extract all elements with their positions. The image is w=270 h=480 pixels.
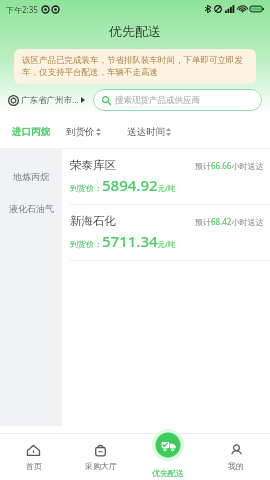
other: 首页 bbox=[26, 443, 41, 458]
staticText: 液化石油气 bbox=[9, 203, 54, 214]
staticText: 荣泰库区 bbox=[70, 158, 116, 172]
button[interactable]: 我的 bbox=[202, 433, 270, 480]
other: 我的 bbox=[229, 443, 244, 458]
staticText: 搜索现货产品或供应商 bbox=[115, 95, 200, 106]
button[interactable]: 荣泰库区 bbox=[62, 149, 270, 204]
staticText: 该区产品已完成装车，节省排队装车时间，下单即可立即发车，仅支持平台配送，车辆不走… bbox=[22, 55, 248, 78]
staticText: 我的 bbox=[228, 461, 244, 471]
staticText: 下午2:35 bbox=[6, 4, 38, 15]
button[interactable]: 送达时间 bbox=[123, 126, 175, 138]
staticText: 预计68.42小时送达 bbox=[195, 216, 264, 227]
staticText: 到货价：5711.34元/吨 bbox=[70, 231, 176, 251]
button[interactable]: 到货价 bbox=[62, 126, 105, 138]
button[interactable]: 优先配送 bbox=[134, 433, 202, 480]
staticText: 到货价 bbox=[66, 126, 95, 138]
button[interactable]: 搜索现货产品或供应商 bbox=[93, 89, 262, 111]
staticText: 预计66.66小时送达 bbox=[195, 160, 264, 171]
staticText: 首页 bbox=[26, 461, 42, 471]
other: 采购大厅 bbox=[93, 443, 108, 458]
staticText: 新海石化 bbox=[70, 214, 116, 228]
staticText: 优先配送 bbox=[152, 468, 184, 478]
staticText: 到货价：5894.92元/吨 bbox=[70, 175, 176, 195]
button[interactable]: 新海石化 bbox=[62, 205, 270, 260]
staticText: 优先配送 bbox=[109, 23, 161, 39]
staticText: 广东省广州市... bbox=[21, 94, 79, 106]
button[interactable]: 广东省广州市... bbox=[8, 94, 85, 106]
staticText: 进口丙烷 bbox=[12, 126, 50, 138]
button[interactable]: 地炼丙烷 bbox=[0, 160, 62, 192]
button[interactable]: 采购大厅 bbox=[67, 433, 134, 480]
button[interactable]: 液化石油气 bbox=[0, 192, 62, 224]
staticText: 送达时间 bbox=[127, 126, 165, 138]
staticText: 地炼丙烷 bbox=[13, 171, 49, 182]
button[interactable]: 首页 bbox=[0, 433, 67, 480]
staticText: 采购大厅 bbox=[85, 461, 117, 471]
button[interactable]: 进口丙烷 bbox=[0, 116, 62, 148]
